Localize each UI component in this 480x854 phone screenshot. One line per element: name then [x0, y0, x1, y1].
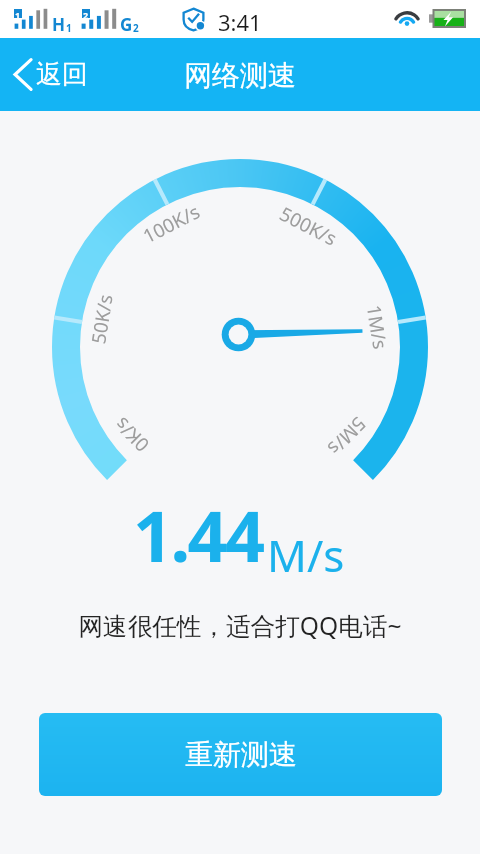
staticText: 0K/s: [109, 412, 155, 458]
staticText: 网络测速: [184, 58, 296, 93]
staticText: 重新测速: [185, 737, 297, 772]
staticText: 2: [83, 9, 89, 18]
staticText: H: [52, 13, 66, 36]
button[interactable]: 返回: [0, 38, 102, 111]
staticText: 1M/s: [361, 303, 393, 352]
staticText: M/s: [267, 525, 345, 585]
staticText: 1: [15, 9, 21, 18]
staticText: 网速很任性，适合打QQ电话~: [0, 609, 480, 643]
staticText: 50K/s: [85, 292, 119, 346]
staticText: 5M/s: [321, 411, 372, 461]
staticText: 3:41: [218, 7, 262, 37]
staticText: 返回: [36, 58, 88, 91]
button[interactable]: 重新测速: [39, 713, 442, 796]
staticText: 2: [133, 21, 139, 35]
staticText: 1: [66, 21, 72, 35]
staticText: 100K/s: [138, 198, 205, 249]
staticText: G: [120, 13, 133, 36]
staticText: 500K/s: [275, 201, 342, 252]
staticText: 1.44: [133, 487, 263, 582]
